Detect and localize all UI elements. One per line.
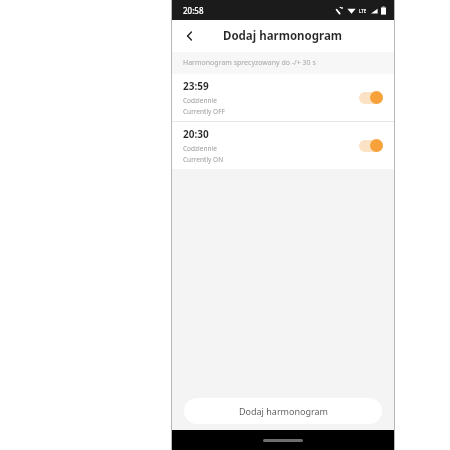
staticText: Codziennie	[183, 96, 217, 105]
staticText: Dodaj harmonogram	[223, 28, 343, 44]
button[interactable]: 20:30	[172, 122, 394, 169]
button[interactable]: Toggle schedule	[359, 91, 383, 104]
button[interactable]: Toggle schedule	[359, 139, 383, 152]
staticText: Codziennie	[183, 144, 217, 153]
staticText: Currently OFF	[183, 107, 225, 116]
staticText: 20:58	[183, 5, 204, 16]
staticText: Dodaj harmonogram	[239, 405, 328, 417]
button[interactable]: Back	[178, 24, 202, 48]
staticText: Harmonogram sprecyzowany do -/+ 30 s	[183, 58, 316, 68]
staticText: 20:30	[183, 127, 209, 141]
button[interactable]: 23:59	[172, 74, 394, 121]
staticText: Currently ON	[183, 155, 224, 164]
staticText: LTE	[359, 8, 367, 14]
staticText: 23:59	[183, 79, 209, 93]
button[interactable]: Dodaj harmonogram	[184, 398, 382, 424]
